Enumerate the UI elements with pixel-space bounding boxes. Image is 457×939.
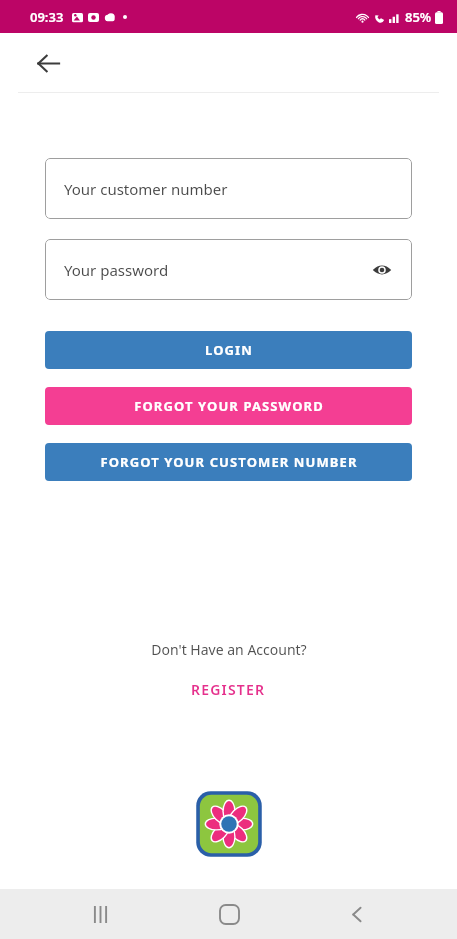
- button[interactable]: Your customer number: [45, 158, 412, 219]
- button[interactable]: Back: [329, 889, 385, 939]
- button[interactable]: FORGOT YOUR CUSTOMER NUMBER: [45, 443, 412, 481]
- staticText: LOGIN: [205, 341, 253, 359]
- staticText: 85%: [405, 8, 432, 26]
- button[interactable]: REGISTER: [181, 677, 276, 702]
- button[interactable]: LOGIN: [45, 331, 412, 369]
- button[interactable]: Show password: [365, 253, 399, 287]
- staticText: REGISTER: [191, 680, 266, 699]
- staticText: Don't Have an Account?: [151, 640, 307, 659]
- staticText: Your password: [64, 260, 169, 280]
- staticText: 09:33: [30, 8, 64, 26]
- button[interactable]: Back: [26, 41, 70, 85]
- other: App logo: [193, 788, 265, 860]
- button[interactable]: Your password: [45, 239, 412, 300]
- button[interactable]: Home: [201, 889, 257, 939]
- staticText: FORGOT YOUR CUSTOMER NUMBER: [100, 453, 358, 471]
- button[interactable]: Recent apps: [72, 889, 128, 939]
- button[interactable]: FORGOT YOUR PASSWORD: [45, 387, 412, 425]
- staticText: FORGOT YOUR PASSWORD: [134, 397, 324, 415]
- staticText: Your customer number: [64, 179, 228, 199]
